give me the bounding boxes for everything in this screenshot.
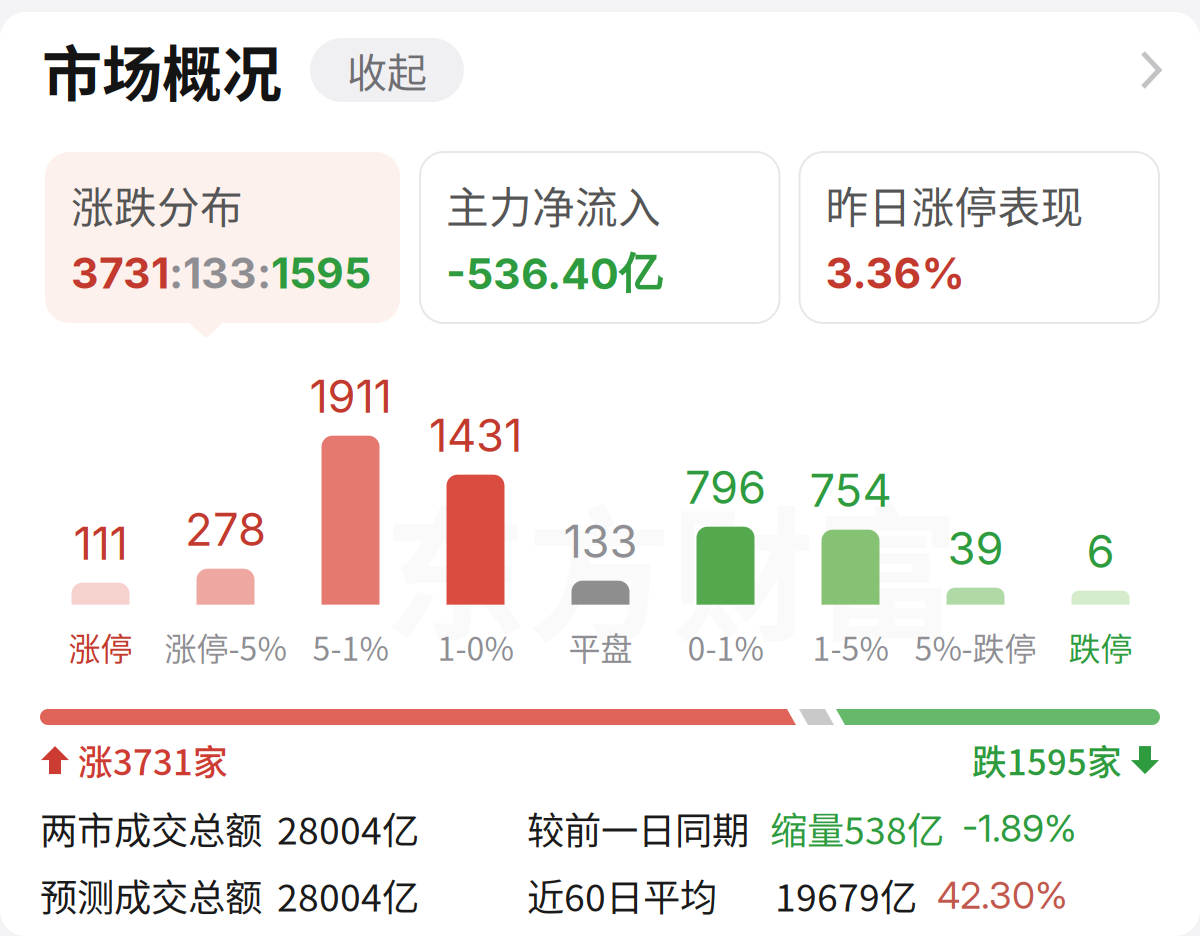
staticText: 预测成交总额 [40,868,262,922]
staticText: 3.36% [825,247,964,299]
staticText: 较前一日同期 [527,801,749,855]
staticText: 涨3731家 [78,735,228,785]
staticText: 754 [809,463,891,518]
staticText: 近60日平均 [527,868,717,922]
staticText: 缩量538亿 [770,801,944,855]
staticText: 1-0% [437,624,513,670]
button[interactable]: 收起 [310,38,464,102]
staticText: 昨日涨停表现 [825,174,1083,236]
staticText: 3731 [71,247,169,299]
staticText: 市场概况 [42,27,282,113]
staticText: 涨停-5% [164,624,286,670]
staticText: 6 [1086,524,1114,579]
staticText: 796 [685,460,766,515]
staticText: 133 [563,514,637,569]
staticText: 1911 [309,369,391,424]
staticText: 跌1595家 [972,735,1122,785]
staticText: 111 [73,516,127,571]
staticText: 涨跌分布 [71,174,243,236]
staticText: 28004亿 [277,868,419,922]
button[interactable]: 涨跌分布 [45,152,400,323]
button[interactable]: More [1126,50,1176,90]
staticText: 28004亿 [277,801,419,855]
staticText: 1431 [429,408,522,463]
staticText: 39 [947,521,1003,576]
staticText: 东方财富 [383,462,959,670]
staticText: 133 [183,247,257,299]
staticText: : [257,247,271,299]
staticText: 平盘 [568,624,632,670]
staticText: 5-1% [312,624,388,670]
staticText: 两市成交总额 [40,801,262,855]
staticText: 收起 [347,41,427,99]
button[interactable]: 主力净流入 [420,152,779,323]
staticText: 涨停 [68,624,132,670]
staticText: 跌停 [1068,624,1132,670]
staticText: 278 [185,502,266,557]
staticText: 0-1% [687,624,763,670]
button[interactable]: 昨日涨停表现 [799,152,1159,323]
staticText: -536.40亿 [446,246,662,300]
staticText: -1.89% [962,806,1077,851]
staticText: 主力净流入 [446,174,661,236]
staticText: 42.30% [937,873,1068,918]
staticText: : [169,247,183,299]
staticText: 1595 [271,247,371,299]
staticText: 1-5% [812,624,888,670]
staticText: 19679亿 [775,868,917,922]
staticText: 5%-跌停 [914,624,1036,670]
